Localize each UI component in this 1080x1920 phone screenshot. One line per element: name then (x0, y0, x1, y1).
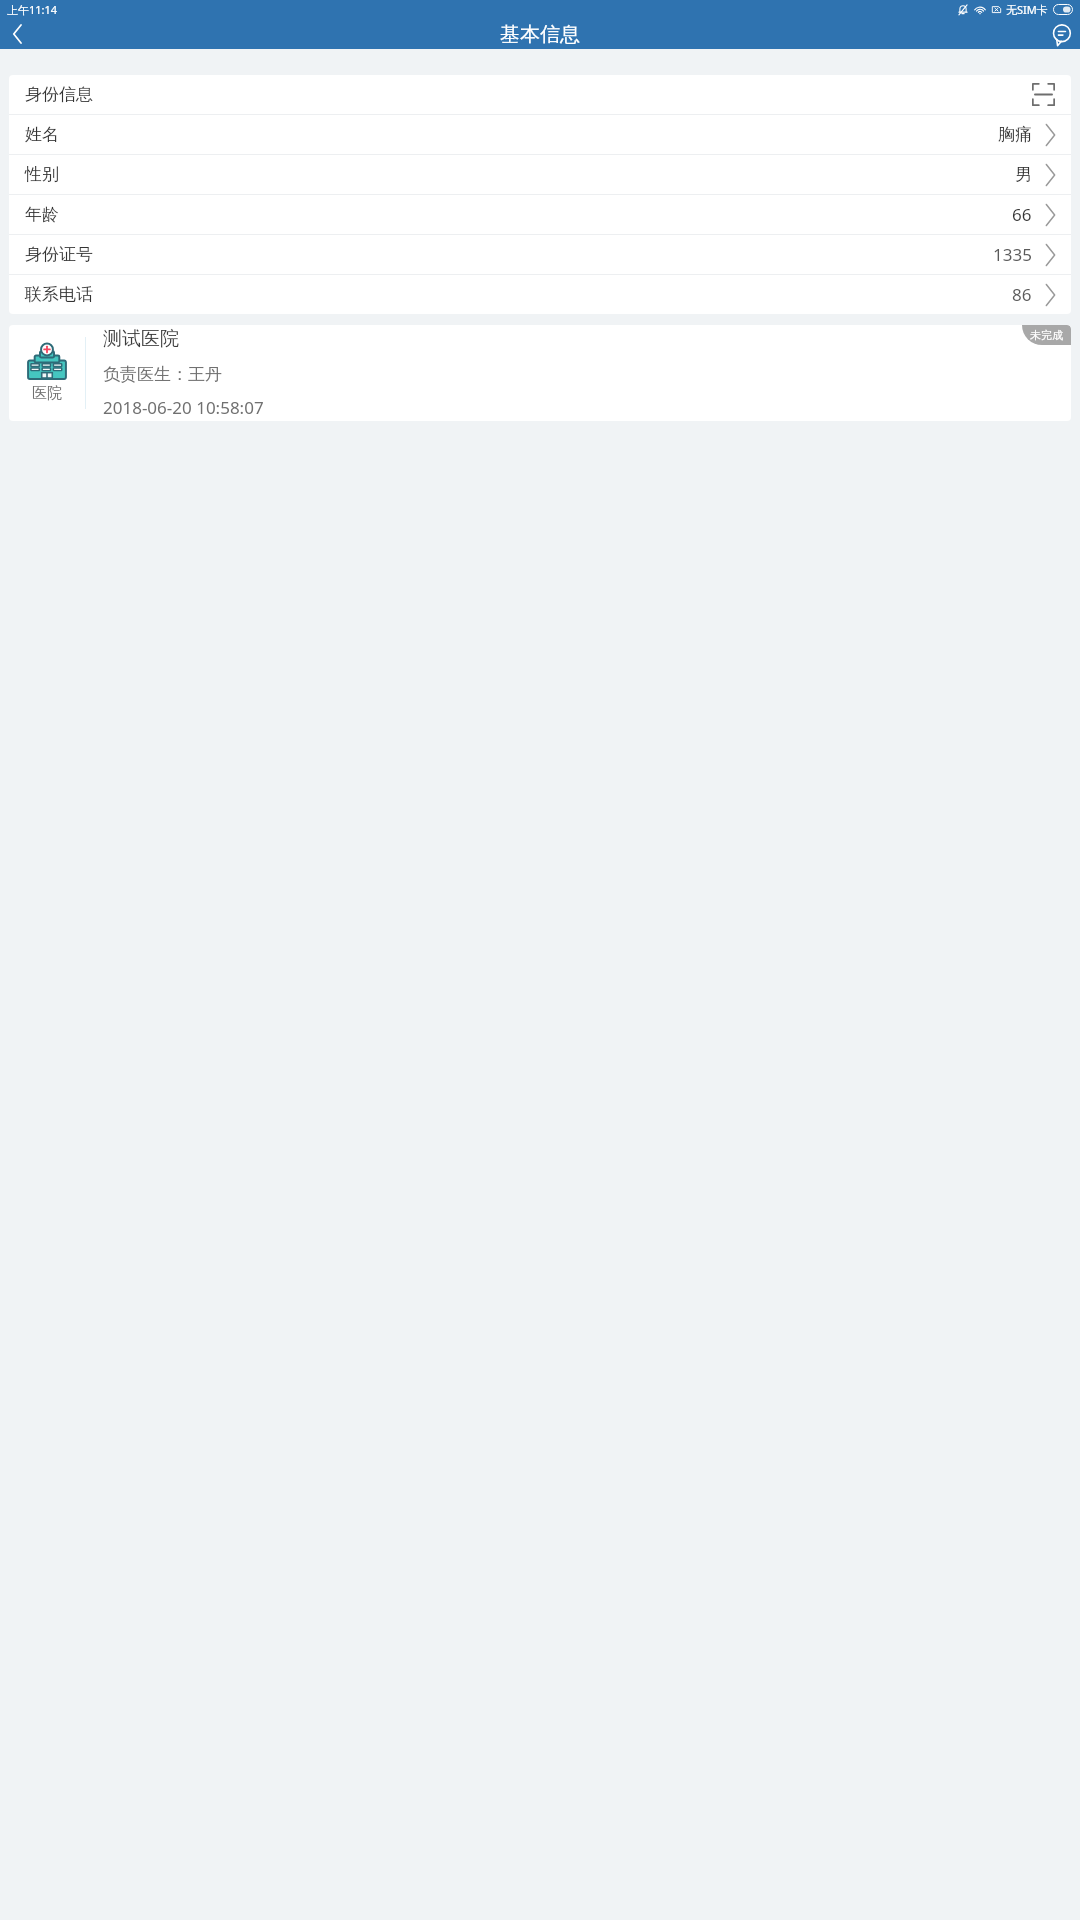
staticText: 86 (1012, 283, 1032, 306)
staticText: 胸痛 (998, 124, 1032, 145)
staticText: 测试医院 (103, 327, 179, 351)
staticText: 1335 (993, 243, 1032, 266)
button[interactable]: 联系电话 (9, 275, 1071, 314)
button[interactable]: 身份信息 (9, 75, 1071, 114)
staticText: 姓名 (25, 124, 59, 145)
staticText: 身份信息 (25, 84, 93, 105)
staticText: 无SIM卡 (1006, 2, 1048, 17)
button[interactable]: 证件扫描 (1032, 83, 1055, 106)
staticText: 上午11:14 (7, 2, 58, 17)
staticText: 2018-06-20 10:58:07 (103, 396, 264, 419)
staticText: 医院 (32, 384, 62, 403)
staticText: 联系电话 (25, 284, 93, 305)
staticText: 年龄 (25, 204, 59, 225)
staticText: 身份证号 (25, 244, 93, 265)
button[interactable]: 姓名 (9, 115, 1071, 154)
button[interactable]: Back (0, 19, 34, 49)
staticText: 基本信息 (500, 22, 580, 47)
button[interactable]: 未完成 (9, 325, 1071, 421)
staticText: 性别 (25, 164, 59, 185)
button[interactable]: 性别 (9, 155, 1071, 194)
staticText: 66 (1012, 203, 1032, 226)
staticText: 男 (1015, 164, 1032, 185)
staticText: 未完成 (1030, 328, 1063, 342)
staticText: 负责医生：王丹 (103, 364, 222, 385)
button[interactable]: Messages (1042, 19, 1080, 49)
button[interactable]: 身份证号 (9, 235, 1071, 274)
button[interactable]: 年龄 (9, 195, 1071, 234)
